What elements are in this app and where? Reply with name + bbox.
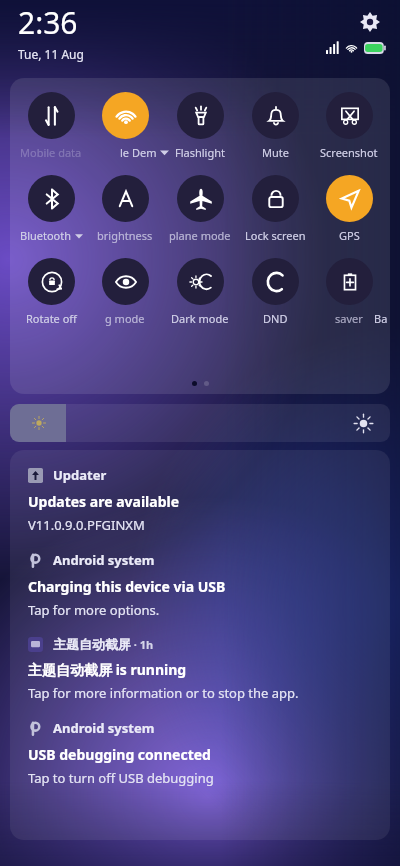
button[interactable]: DND (239, 258, 311, 326)
staticText: le (120, 145, 130, 160)
staticText: saver (335, 311, 363, 326)
button[interactable]: Settings (352, 4, 388, 40)
staticText: Tap for more information or to stop the … (28, 684, 299, 702)
staticText: Dem (132, 145, 157, 160)
staticText: Ba (374, 311, 388, 326)
button[interactable]: Brightness slider (10, 404, 390, 442)
staticText: GPS (339, 228, 360, 243)
button[interactable]: GPS (313, 175, 385, 243)
staticText: Tap for more options. (28, 601, 160, 619)
staticText: Dark mode (171, 311, 229, 326)
staticText: Updates are available (28, 492, 180, 511)
staticText: Lock screen (245, 228, 306, 243)
staticText: Mute (262, 145, 289, 160)
staticText: · 1h (131, 637, 154, 652)
staticText: Flashlight (175, 145, 225, 160)
staticText: 主题自动截屏 (53, 636, 131, 652)
staticText: Android system (53, 719, 155, 737)
button[interactable]: Flashlight (164, 92, 236, 160)
button[interactable]: Updater (10, 466, 390, 534)
staticText: USB debugging connected (28, 745, 211, 764)
button[interactable]: plane mode (164, 175, 236, 243)
button[interactable]: Dark mode (164, 258, 236, 326)
staticText: Bluetooth (20, 228, 72, 243)
staticText: 2:36 (18, 2, 78, 43)
staticText: Updater (53, 466, 107, 484)
staticText: Android system (53, 551, 155, 569)
staticText: Rotate off (26, 311, 77, 326)
staticText: Tap to turn off USB debugging (28, 769, 214, 787)
button[interactable]: Android system (10, 719, 390, 787)
staticText: plane mode (169, 228, 231, 243)
button[interactable]: le (89, 92, 161, 160)
button[interactable]: brightness (89, 175, 161, 243)
button[interactable]: Mobile data (15, 92, 87, 160)
staticText: V11.0.9.0.PFGINXM (28, 516, 145, 534)
staticText: DND (263, 311, 288, 326)
button[interactable]: 主题自动截屏 (10, 636, 390, 702)
staticText: Charging this device via USB (28, 577, 226, 596)
button[interactable]: saver (313, 258, 385, 326)
button[interactable]: Android system (10, 551, 390, 619)
button[interactable]: Screenshot (313, 92, 385, 160)
button[interactable]: Mute (239, 92, 311, 160)
staticText: g mode (105, 311, 145, 326)
staticText: brightness (97, 228, 153, 243)
button[interactable]: Lock screen (239, 175, 311, 243)
button[interactable]: Bluetooth (15, 175, 87, 243)
button[interactable]: g mode (89, 258, 161, 326)
staticText: 主题自动截屏 is running (28, 660, 187, 679)
staticText: Tue, 11 Aug (18, 46, 84, 62)
button[interactable]: Rotate off (15, 258, 87, 326)
staticText: Mobile data (20, 145, 82, 160)
staticText: Screenshot (320, 145, 378, 160)
